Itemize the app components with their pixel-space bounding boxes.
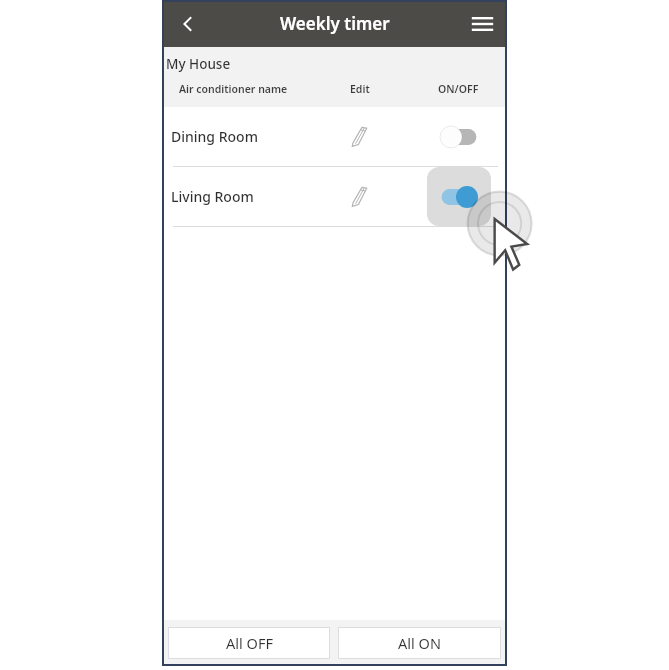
button[interactable]: Toggle Dining Room (427, 107, 491, 166)
button[interactable]: Edit Living Room (340, 177, 380, 217)
staticText: ON/OFF (438, 82, 479, 96)
staticText: Edit (350, 82, 370, 96)
staticText: Dining Room (171, 127, 258, 146)
staticText: Air conditioner name (179, 82, 288, 96)
button[interactable]: All ON (338, 627, 501, 659)
staticText: All ON (398, 633, 441, 653)
staticText: Weekly timer (280, 12, 390, 35)
button[interactable]: Back (168, 4, 208, 44)
staticText: Living Room (171, 187, 254, 206)
button[interactable]: Toggle Living Room (427, 167, 491, 226)
staticText: All OFF (226, 633, 273, 653)
button[interactable]: All OFF (168, 627, 330, 659)
button[interactable]: Menu (462, 4, 502, 44)
button[interactable]: Edit Dining Room (340, 117, 380, 157)
staticText: My House (166, 55, 231, 73)
